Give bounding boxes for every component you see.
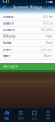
staticText: Summit Ridge <box>13 4 42 10</box>
staticText: Me <box>46 117 50 120</box>
staticText: Hard <box>46 35 52 38</box>
button[interactable]: More options <box>47 4 54 10</box>
staticText: 3h 20m <box>41 28 52 32</box>
staticText: Season <box>3 48 12 51</box>
button[interactable]: Surface <box>0 40 55 46</box>
staticText: None <box>44 54 52 58</box>
button[interactable]: Me <box>41 108 55 122</box>
button[interactable]: Duration <box>0 27 55 33</box>
staticText: Duration <box>3 28 15 32</box>
button[interactable]: Distance <box>0 14 55 20</box>
button[interactable]: Trails <box>14 108 28 122</box>
staticText: 612 m <box>43 22 52 25</box>
staticText: 9:41 <box>2 0 9 4</box>
staticText: Difficulty <box>3 35 15 38</box>
button[interactable]: Difficulty <box>0 33 55 40</box>
button[interactable]: Back <box>1 4 8 10</box>
staticText: Elevation <box>3 22 14 25</box>
button[interactable]: Log <box>27 108 41 122</box>
button[interactable]: Map <box>0 108 14 122</box>
staticText: Water <box>3 54 10 58</box>
staticText: Trails <box>18 117 24 120</box>
button[interactable]: Season <box>0 46 55 53</box>
staticText: Map <box>4 117 9 120</box>
staticText: Trail open <box>3 65 18 68</box>
staticText: Log <box>32 117 37 120</box>
button[interactable]: Water <box>0 53 55 59</box>
staticText: Distance <box>3 15 14 19</box>
staticText: 8.4 km <box>43 15 52 19</box>
button[interactable]: Elevation <box>0 20 55 27</box>
staticText: Jun-Sep <box>41 48 52 51</box>
staticText: Surface <box>3 41 12 45</box>
staticText: Rock <box>46 41 52 45</box>
